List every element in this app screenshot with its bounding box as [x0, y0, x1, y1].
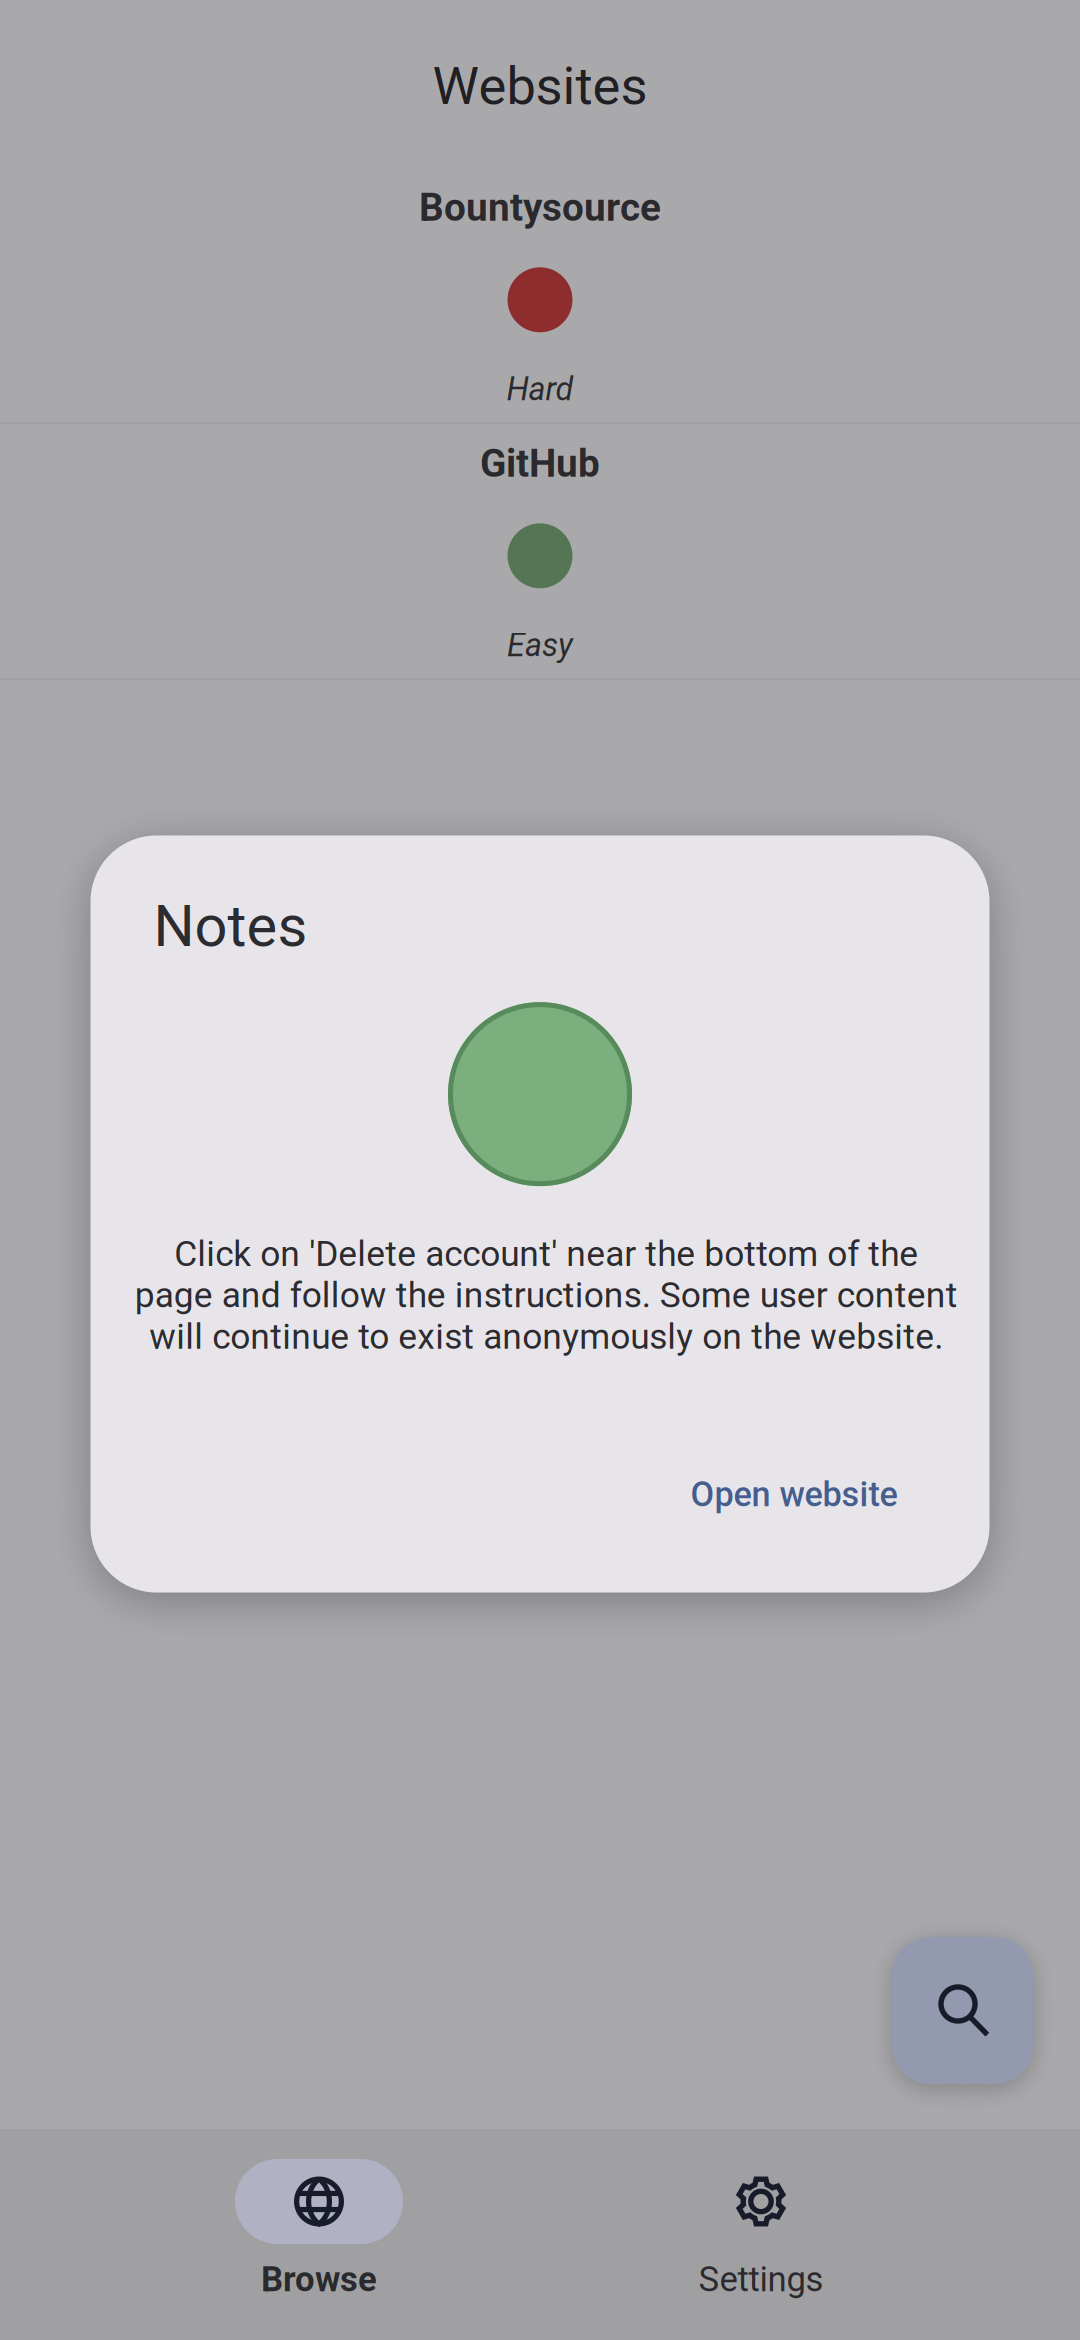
staticText: Websites: [432, 55, 647, 117]
staticText: Hard: [506, 370, 573, 408]
button[interactable]: GitHub: [0, 424, 1080, 678]
staticText: Browse: [261, 2259, 377, 2300]
staticText: Notes: [153, 892, 307, 960]
staticText: Easy: [507, 626, 573, 664]
staticText: Settings: [698, 2259, 823, 2300]
button[interactable]: Settings: [621, 2129, 901, 2340]
staticText: Bountysource: [419, 185, 661, 230]
button[interactable]: Open website: [666, 1460, 921, 1529]
button[interactable]: Bountysource: [0, 168, 1080, 422]
staticText: GitHub: [480, 441, 600, 486]
button[interactable]: Browse: [179, 2129, 459, 2340]
staticText: Click on 'Delete account' near the botto…: [134, 1233, 957, 1357]
button[interactable]: Search: [892, 1937, 1033, 2084]
staticText: Open website: [690, 1474, 897, 1515]
